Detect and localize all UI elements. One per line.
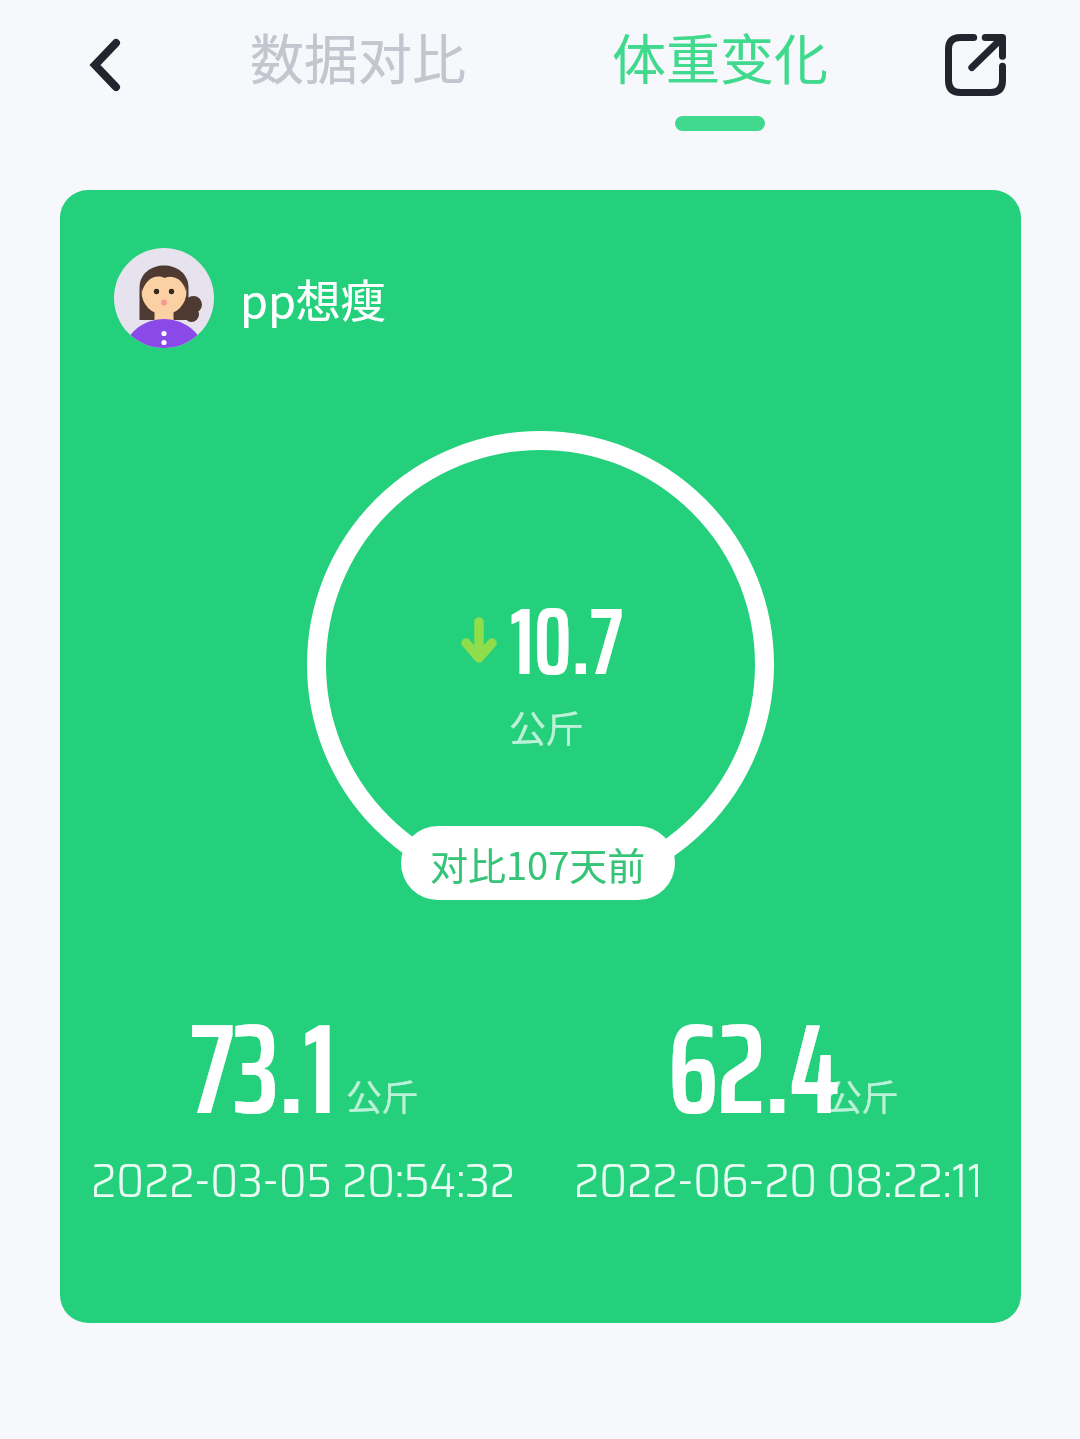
staticText: 2022-06-20 08:22:11 [574,1143,983,1219]
button[interactable]: pp想瘦 [114,248,386,348]
staticText: 数据对比 [250,17,466,95]
staticText: 73.1 [190,968,336,1169]
button[interactable]: 数据对比 [228,4,488,108]
staticText: 公斤 [826,1069,899,1121]
button[interactable]: 体重变化 [590,4,850,136]
staticText: 2022-03-05 20:54:32 [91,1143,515,1219]
staticText: 62.4 [668,968,839,1169]
staticText: pp想瘦 [240,266,386,331]
staticText: 体重变化 [612,17,828,95]
button[interactable]: Share [930,20,1020,110]
staticText: 公斤 [509,700,583,754]
staticText: 10.7 [510,566,623,716]
button[interactable]: 对比107天前 [401,826,675,900]
button[interactable]: Back [57,17,153,113]
staticText: 对比107天前 [430,836,646,891]
staticText: 公斤 [346,1069,419,1121]
